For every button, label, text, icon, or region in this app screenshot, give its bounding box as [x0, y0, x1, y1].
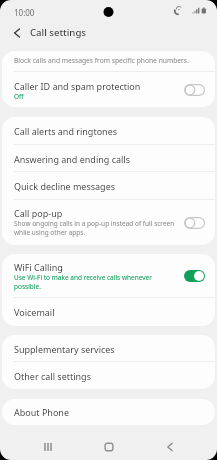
staticText: 10:00: [14, 7, 35, 18]
button[interactable]: Call alerts and ringtones: [2, 117, 215, 145]
staticText: Answering and ending calls: [14, 153, 130, 165]
staticText: Call pop-up: [14, 207, 63, 219]
button[interactable]: Voicemail: [2, 298, 215, 326]
button[interactable]: Caller ID and spam protection: [2, 72, 215, 107]
staticText: Caller ID and spam protection: [14, 80, 141, 92]
button[interactable]: About Phone: [2, 399, 215, 425]
staticText: Use Wi-Fi to make and receive calls when…: [14, 273, 152, 291]
button[interactable]: Supplementary services: [2, 335, 215, 362]
button[interactable]: Call pop-up toggle: [184, 217, 205, 229]
staticText: Voicemail: [14, 306, 55, 318]
staticText: Other call settings: [14, 370, 91, 382]
staticText: Call settings: [30, 26, 86, 39]
button[interactable]: Call pop-up: [2, 200, 215, 245]
staticText: Supplementary services: [14, 343, 115, 355]
button[interactable]: WiFi Calling: [2, 254, 215, 298]
staticText: Call alerts and ringtones: [14, 125, 118, 137]
staticText: WiFi Calling: [14, 261, 63, 273]
staticText: Show ongoing calls in a pop-up instead o…: [14, 219, 175, 237]
button[interactable]: Back: [152, 434, 188, 460]
staticText: Block calls and messages from specific p…: [14, 56, 189, 65]
staticText: Quick decline messages: [14, 180, 116, 192]
button[interactable]: Recent apps: [30, 434, 66, 460]
staticText: Off: [14, 92, 24, 101]
button[interactable]: Answering and ending calls: [2, 145, 215, 172]
button[interactable]: Quick decline messages: [2, 172, 215, 200]
button[interactable]: Home: [91, 434, 127, 460]
button[interactable]: WiFi Calling toggle: [184, 270, 205, 282]
button[interactable]: Other call settings: [2, 362, 215, 389]
staticText: About Phone: [14, 406, 69, 418]
button[interactable]: Caller ID and spam protection toggle: [184, 84, 205, 96]
button[interactable]: Back: [4, 20, 30, 46]
